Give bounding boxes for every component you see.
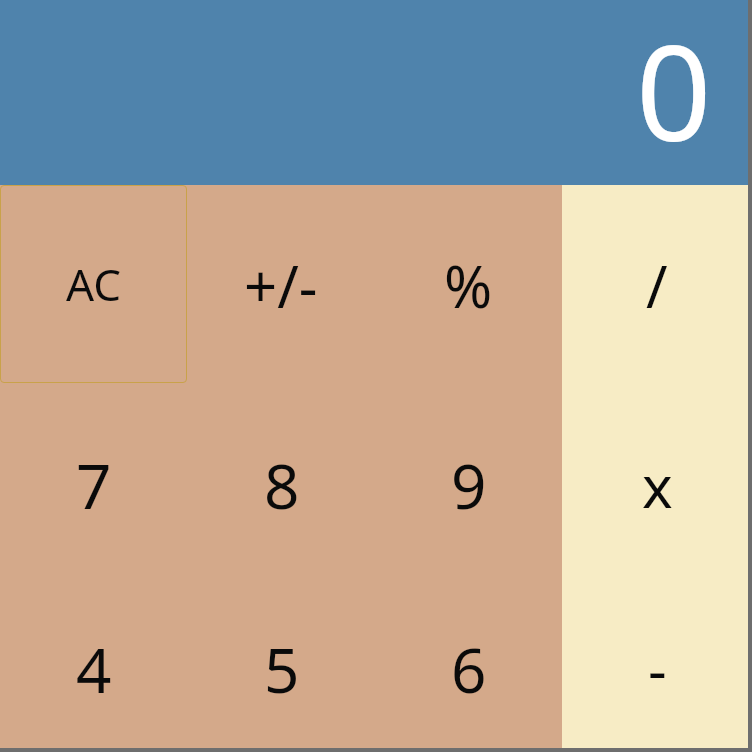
staticText: 8	[264, 443, 300, 527]
staticText: -	[648, 629, 667, 708]
staticText: +/-	[244, 246, 318, 325]
staticText: 0	[636, 0, 712, 177]
button[interactable]: +/-	[187, 185, 374, 385]
staticText: AC	[66, 254, 122, 314]
staticText: 6	[451, 627, 487, 711]
button[interactable]: x	[562, 385, 752, 585]
staticText: /	[646, 246, 668, 325]
button[interactable]: 4	[0, 585, 188, 752]
staticText: 9	[451, 443, 487, 527]
button[interactable]: 5	[188, 585, 375, 752]
button[interactable]: %	[374, 185, 562, 385]
button[interactable]: 6	[375, 585, 562, 752]
staticText: 4	[76, 627, 112, 711]
staticText: %	[444, 246, 493, 325]
staticText: 7	[76, 443, 112, 527]
button[interactable]: AC	[0, 185, 187, 383]
button[interactable]: /	[562, 185, 752, 385]
button[interactable]: -	[562, 585, 752, 752]
staticText: 5	[264, 627, 300, 711]
button[interactable]: 8	[188, 385, 375, 585]
button[interactable]: 9	[375, 385, 562, 585]
staticText: x	[642, 446, 673, 525]
button[interactable]: 7	[0, 385, 188, 585]
